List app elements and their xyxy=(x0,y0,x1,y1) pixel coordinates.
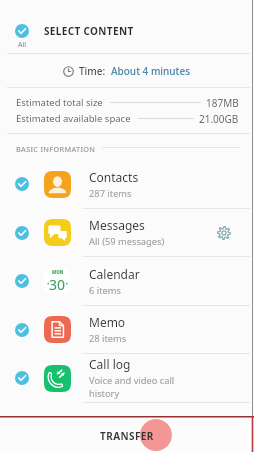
button[interactable]: MON xyxy=(0,257,254,305)
button[interactable]: Messages xyxy=(0,209,254,256)
staticText: Messages xyxy=(89,217,145,233)
button[interactable]: Memo xyxy=(0,306,254,353)
staticText: All xyxy=(18,40,27,50)
staticText: Call log xyxy=(89,356,131,372)
button[interactable]: Select all xyxy=(0,0,44,53)
staticText: 6 items xyxy=(89,284,121,297)
button[interactable]: Call log xyxy=(0,354,254,402)
staticText: Estimated total size xyxy=(16,96,103,109)
staticText: 30 xyxy=(49,275,66,294)
staticText: MON xyxy=(52,269,64,275)
staticText: TRANSFER xyxy=(100,429,154,443)
staticText: About 4 minutes xyxy=(111,64,191,78)
staticText: 28 items xyxy=(89,332,127,345)
staticText: SELECT CONTENT xyxy=(44,24,134,38)
staticText: Memo xyxy=(89,314,126,330)
button[interactable]: TRANSFER xyxy=(0,416,254,452)
staticText: Voice and video call history xyxy=(89,374,203,400)
button[interactable]: Message settings xyxy=(203,209,245,256)
staticText: Time: xyxy=(79,64,106,78)
staticText: 287 items xyxy=(89,187,132,200)
staticText: All (59 messages) xyxy=(89,235,165,248)
button[interactable]: Contacts xyxy=(0,160,254,208)
staticText: 187MB xyxy=(206,96,239,110)
staticText: 21.00GB xyxy=(199,112,239,126)
staticText: BASIC INFORMATION xyxy=(16,144,96,154)
staticText: Estimated available space xyxy=(16,112,131,125)
staticText: Calendar xyxy=(89,266,140,282)
staticText: Contacts xyxy=(89,169,139,185)
